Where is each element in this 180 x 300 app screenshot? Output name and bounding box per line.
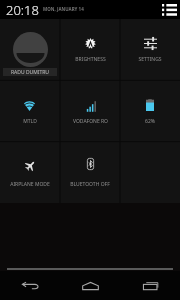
staticText: BRIGHTNESS [75,56,106,63]
button[interactable]: Home [60,271,120,300]
button[interactable]: RADU DUMITRU [0,19,60,80]
staticText: MON, JANUARY 14 [43,6,84,12]
button[interactable]: BRIGHTNESS [60,19,120,80]
staticText: BLUETOOTH OFF [70,181,110,188]
staticText: AIRPLANE MODE [10,181,50,188]
staticText: VODAFONE RO [73,118,108,125]
button[interactable]: VODAFONE RO [60,81,120,142]
button[interactable]: Notifications [157,0,180,19]
button[interactable]: Back [0,271,60,300]
button[interactable]: Recent apps [120,271,180,300]
staticText: 20:18 [6,1,39,19]
button[interactable]: AIRPLANE MODE [0,142,60,203]
button[interactable]: 62% [120,81,180,142]
staticText: 62% [145,118,155,125]
staticText: RADU DUMITRU [11,69,49,76]
staticText: MTLD [23,118,37,125]
button[interactable]: SETTINGS [120,19,180,80]
button[interactable]: MTLD [0,81,60,142]
staticText: SETTINGS [138,56,162,63]
button[interactable]: BLUETOOTH OFF [60,142,120,203]
